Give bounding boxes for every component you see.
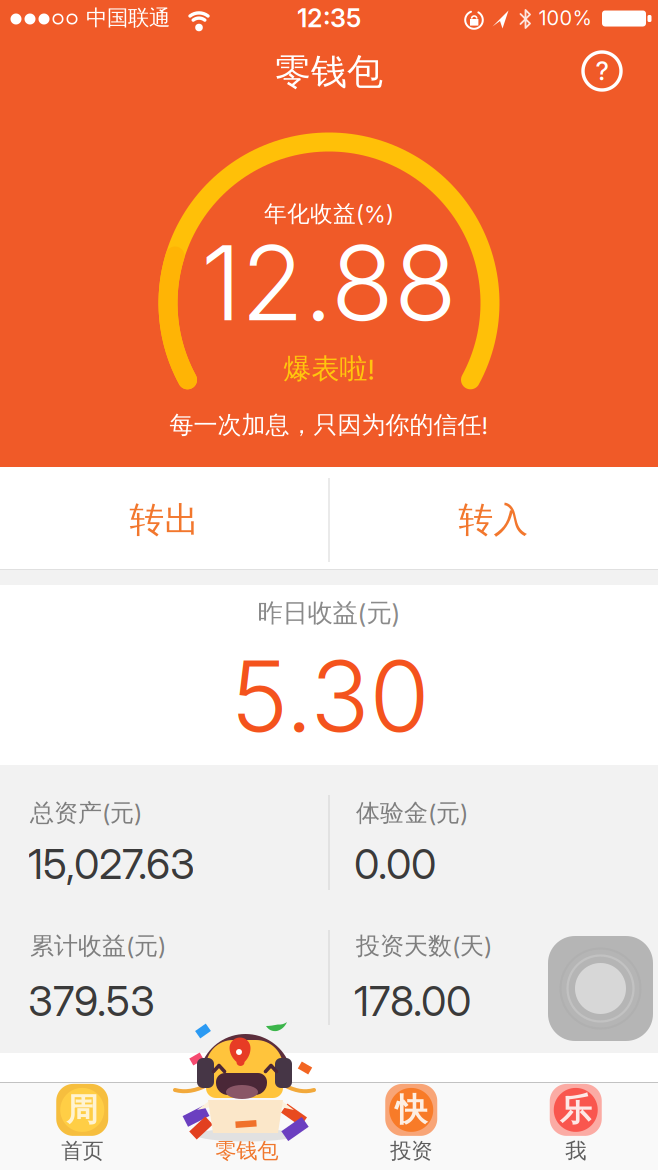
staticText: 昨日收益(元) <box>257 597 400 628</box>
staticText: 总资产(元) <box>30 798 142 828</box>
staticText: 中国联通 <box>86 5 170 31</box>
button[interactable]: 投资 <box>329 1081 493 1167</box>
staticText: 转出 <box>129 499 199 541</box>
staticText: 爆表啦! <box>283 352 374 386</box>
staticText: 快 <box>395 1090 427 1129</box>
staticText: 0.00 <box>354 840 436 888</box>
staticText: 100% <box>538 6 591 30</box>
staticText: 转入 <box>458 499 528 541</box>
button[interactable]: 辅助触控 <box>548 936 653 1041</box>
staticText: 年化收益(%) <box>264 200 394 228</box>
staticText: 379.53 <box>28 977 155 1025</box>
staticText: 首页 <box>61 1138 103 1164</box>
staticText: 每一次加息，只因为你的信任! <box>169 410 488 440</box>
button[interactable]: 帮助 <box>576 45 628 97</box>
staticText: 5.30 <box>230 639 429 753</box>
button[interactable]: 转入 <box>329 468 657 571</box>
button[interactable]: 零钱包 <box>165 1081 329 1167</box>
staticText: 投资 <box>390 1138 432 1164</box>
staticText: 178.00 <box>354 977 471 1025</box>
staticText: 体验金(元) <box>356 798 468 828</box>
staticText: 投资天数(天) <box>356 931 492 961</box>
staticText: 周 <box>66 1090 98 1129</box>
staticText: 15,027.63 <box>28 840 195 888</box>
staticText: 零钱包 <box>215 1138 278 1164</box>
staticText: 零钱包 <box>275 50 383 94</box>
staticText: 12.88 <box>201 222 457 343</box>
staticText: ? <box>595 56 608 86</box>
button[interactable]: 首页 <box>0 1081 164 1167</box>
button[interactable]: 转出 <box>0 468 328 571</box>
staticText: 乐 <box>560 1090 592 1129</box>
staticText: 12:35 <box>297 3 361 33</box>
staticText: 我 <box>565 1138 586 1164</box>
button[interactable]: 我 <box>494 1081 658 1167</box>
staticText: 累计收益(元) <box>30 931 166 961</box>
